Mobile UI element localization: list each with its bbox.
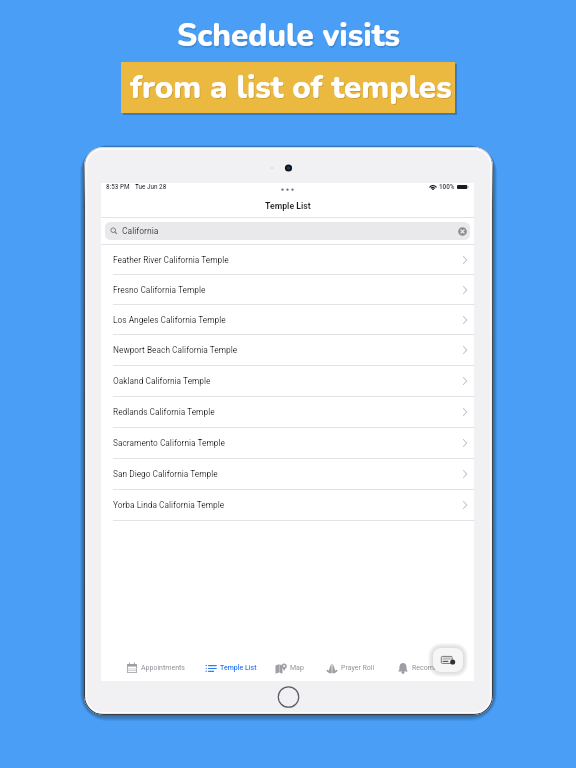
staticText: Los Angeles California Temple <box>113 315 226 325</box>
staticText: Sacramento California Temple <box>113 438 225 448</box>
staticText: Temple List <box>220 664 257 672</box>
button[interactable]: Fresno California Temple <box>101 275 474 305</box>
staticText: California <box>122 226 159 236</box>
button[interactable]: Sacramento California Temple <box>101 428 474 459</box>
staticText: Fresno California Temple <box>113 285 206 295</box>
staticText: San Diego California Temple <box>113 469 218 479</box>
staticText: Newport Beach California Temple <box>113 345 238 355</box>
staticText: Map <box>290 664 304 672</box>
button[interactable]: Appointments <box>126 659 185 677</box>
staticText: Oakland California Temple <box>113 376 211 386</box>
button[interactable]: Feather River California Temple <box>101 245 474 275</box>
staticText: Temple List <box>265 201 311 211</box>
button[interactable]: Map <box>275 659 304 677</box>
staticText: 8:53 PM <box>106 183 130 190</box>
button[interactable]: San Diego California Temple <box>101 459 474 490</box>
button[interactable]: Redlands California Temple <box>101 397 474 428</box>
button[interactable]: Newport Beach California Temple <box>101 335 474 366</box>
button[interactable]: Prayer Roll <box>326 659 375 677</box>
staticText: from a list of temples <box>130 66 452 109</box>
staticText: Schedule visits <box>178 16 401 59</box>
staticText: from a list of temples <box>131 67 453 110</box>
staticText: Appointments <box>141 664 185 672</box>
button[interactable]: California <box>105 222 470 240</box>
staticText: Recommend <box>412 664 452 672</box>
staticText: 100% <box>439 183 455 190</box>
button[interactable]: Clear search <box>458 227 467 236</box>
staticText: Prayer Roll <box>341 664 375 672</box>
staticText: Redlands California Temple <box>113 407 215 417</box>
button[interactable]: Oakland California Temple <box>101 366 474 397</box>
button[interactable]: Los Angeles California Temple <box>101 305 474 335</box>
button[interactable]: Yorba Linda California Temple <box>101 490 474 521</box>
staticText: Tue Jun 28 <box>135 183 167 190</box>
staticText: Feather River California Temple <box>113 255 229 265</box>
staticText: Schedule visits <box>177 14 400 57</box>
button[interactable]: Temple List <box>205 659 257 677</box>
staticText: Yorba Linda California Temple <box>113 500 225 510</box>
button[interactable]: Hide keyboard <box>433 648 463 672</box>
button[interactable]: Recommend <box>397 659 452 677</box>
